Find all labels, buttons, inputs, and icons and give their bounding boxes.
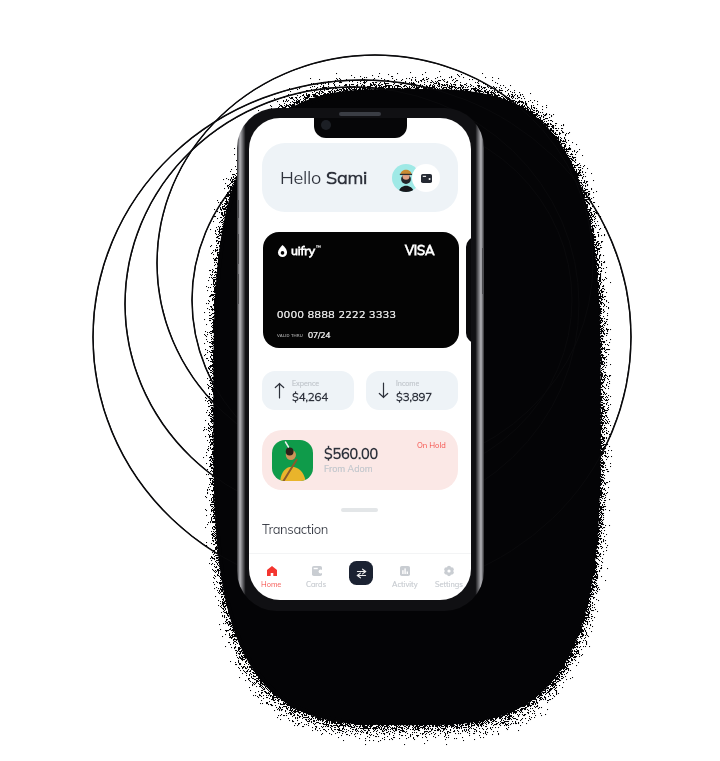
staticText: 07/24 [308, 329, 331, 340]
button[interactable]: Home [249, 566, 294, 589]
button[interactable]: uifry [263, 232, 459, 348]
button[interactable]: Income [366, 371, 458, 410]
staticText: Transaction [262, 521, 328, 537]
button[interactable]: Hello [262, 143, 458, 212]
button[interactable]: Transfer [349, 561, 373, 585]
button[interactable]: Expence [262, 371, 354, 410]
button[interactable]: $560.00 [262, 430, 458, 490]
staticText: Expence [292, 379, 320, 388]
staticText: $560.00 [324, 444, 379, 462]
staticText: Hello [280, 166, 326, 189]
staticText: $3,897 [396, 389, 432, 403]
staticText: Settings [435, 580, 463, 589]
button[interactable]: Cards [294, 566, 339, 589]
button[interactable]: Settings [427, 566, 471, 589]
staticText: ™ [316, 244, 321, 250]
staticText: uifry [291, 243, 315, 258]
staticText: On Hold [417, 440, 446, 450]
staticText: VISA [405, 242, 435, 258]
staticText: From Adom [324, 463, 373, 474]
button[interactable]: Activity [383, 566, 427, 589]
staticText: VALID THRU [277, 333, 303, 338]
staticText: Home [261, 580, 282, 589]
staticText: 0000 8888 2222 3333 [277, 307, 397, 320]
staticText: Cards [306, 580, 327, 589]
staticText: $4,264 [292, 389, 328, 403]
staticText: Income [396, 379, 420, 388]
staticText: Sami [326, 166, 367, 189]
staticText: Activity [392, 580, 418, 589]
